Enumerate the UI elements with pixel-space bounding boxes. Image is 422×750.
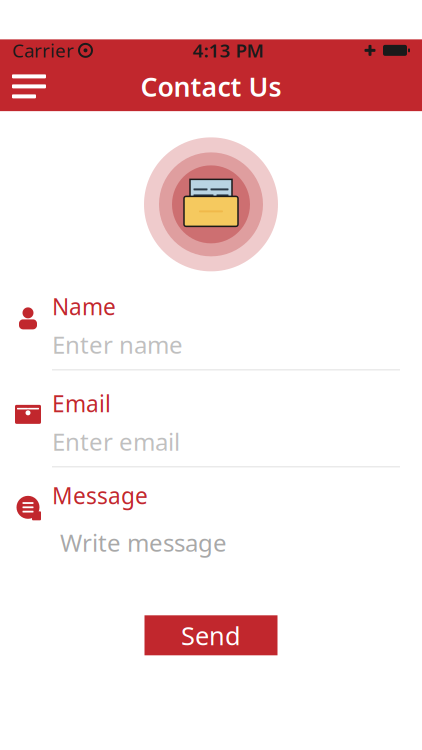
staticText: Send	[181, 618, 241, 652]
staticText: Email	[52, 388, 111, 418]
staticText: 4:13 PM	[192, 38, 263, 63]
staticText: Message	[52, 480, 148, 510]
staticText: Write message	[60, 526, 227, 558]
button[interactable]: Send	[144, 615, 277, 655]
staticText: Carrier	[12, 38, 74, 63]
staticText: Contact Us	[140, 69, 281, 104]
staticText: Name	[52, 291, 116, 321]
staticText: Enter email	[52, 425, 180, 457]
button[interactable]: Menu	[0, 66, 58, 106]
staticText: Enter name	[52, 328, 183, 360]
